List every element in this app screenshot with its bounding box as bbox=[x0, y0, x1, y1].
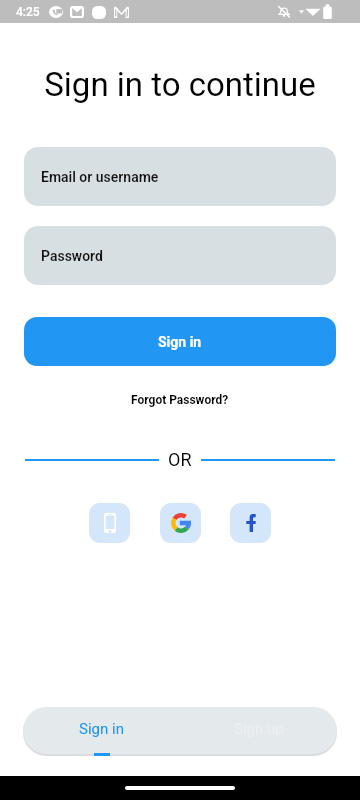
button[interactable]: Email or username bbox=[24, 147, 336, 206]
staticText: Sign in bbox=[79, 720, 124, 738]
staticText: Email or username bbox=[41, 169, 159, 185]
staticText: Sign in bbox=[158, 334, 202, 350]
staticText: 4:25 bbox=[16, 5, 40, 19]
button[interactable]: Forgot Password? bbox=[121, 390, 239, 410]
button[interactable]: Sign in with Google bbox=[160, 503, 201, 543]
button[interactable]: Sign up bbox=[180, 707, 337, 754]
button[interactable]: Password bbox=[24, 226, 336, 285]
staticText: Forgot Password? bbox=[131, 393, 229, 407]
button[interactable]: Sign in with Facebook bbox=[230, 503, 271, 543]
button[interactable]: Sign in bbox=[24, 317, 336, 366]
staticText: Sign in to continue bbox=[0, 65, 360, 104]
button[interactable]: Sign in bbox=[23, 707, 180, 754]
staticText: OR bbox=[168, 449, 192, 470]
staticText: Password bbox=[41, 248, 103, 264]
button[interactable]: Sign in with phone bbox=[89, 503, 130, 543]
